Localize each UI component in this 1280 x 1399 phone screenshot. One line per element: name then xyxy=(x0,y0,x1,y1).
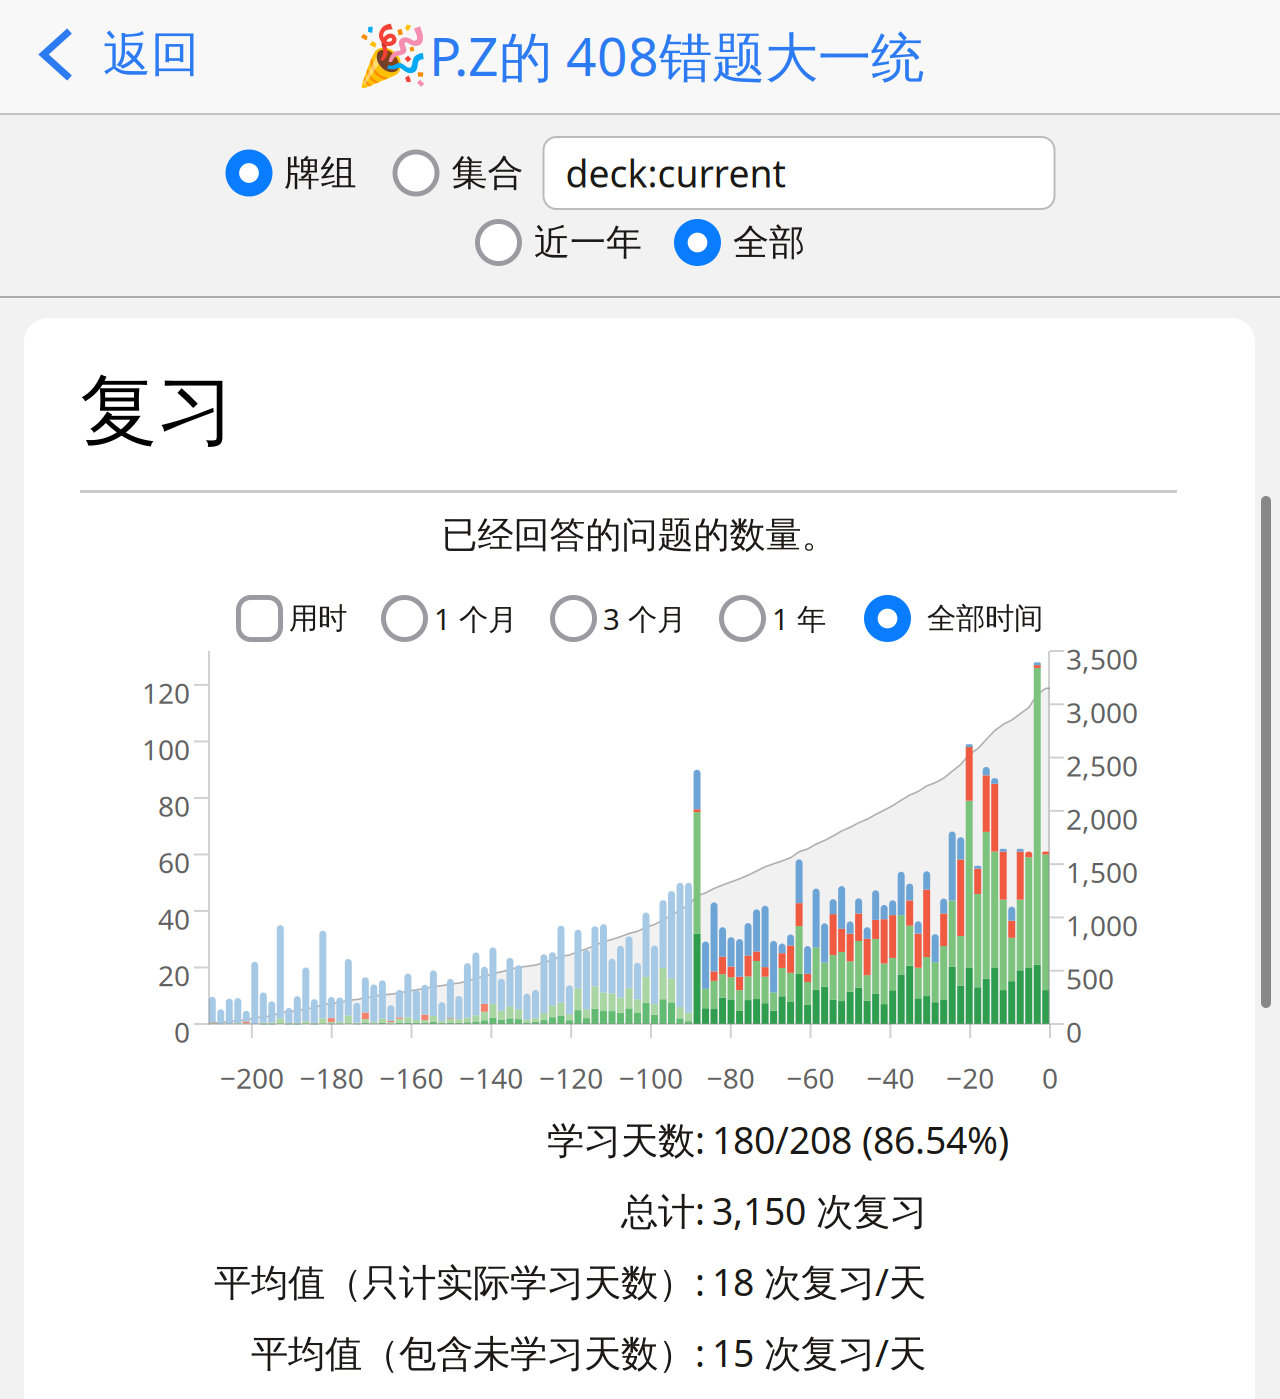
staticText: 🎉 xyxy=(356,22,429,89)
staticText: 全部时间 xyxy=(927,600,1043,636)
staticText: 集合 xyxy=(451,151,523,195)
staticText: 100 xyxy=(142,731,190,768)
staticText: 近一年 xyxy=(534,220,642,265)
staticText: 1,500 xyxy=(1066,854,1138,891)
button[interactable]: 全部时间 xyxy=(864,595,1043,642)
staticText: 1 个月 xyxy=(434,599,517,638)
staticText: −160 xyxy=(379,1059,443,1097)
staticText: 500 xyxy=(1066,960,1114,997)
staticText: 60 xyxy=(158,844,190,881)
staticText: 18 次复习/天 xyxy=(712,1257,926,1306)
staticText: 全部 xyxy=(733,220,805,265)
staticText: 用时 xyxy=(289,600,347,636)
button[interactable]: 1 年 xyxy=(719,595,826,642)
staticText: −40 xyxy=(866,1059,914,1097)
staticText: −120 xyxy=(539,1059,603,1097)
staticText: 2,500 xyxy=(1066,747,1138,784)
button[interactable]: 全部 xyxy=(674,219,805,266)
button[interactable]: 1 个月 xyxy=(381,595,517,642)
staticText: 20 xyxy=(158,957,190,994)
staticText: 120 xyxy=(142,674,190,711)
staticText: 15 次复习/天 xyxy=(712,1328,926,1377)
button[interactable]: 用时 xyxy=(236,595,347,642)
button[interactable]: 3 个月 xyxy=(550,595,686,642)
staticText: 学习天数: xyxy=(547,1115,705,1164)
staticText: 复习 xyxy=(80,363,234,458)
staticText: −100 xyxy=(619,1059,683,1097)
staticText: 40 xyxy=(158,900,190,938)
staticText: 3,000 xyxy=(1066,694,1138,731)
button[interactable]: 返回 xyxy=(40,0,240,109)
staticText: P.Z的 408错题大一统 xyxy=(429,20,924,91)
button[interactable]: 牌组 xyxy=(225,149,356,196)
staticText: 牌组 xyxy=(284,151,356,195)
staticText: 180/208 (86.54%) xyxy=(712,1115,1009,1164)
staticText: 2,000 xyxy=(1066,800,1138,837)
staticText: −200 xyxy=(220,1059,284,1097)
staticText: 总计: xyxy=(621,1186,705,1235)
staticText: −140 xyxy=(459,1059,523,1097)
staticText: −80 xyxy=(707,1059,755,1097)
staticText: 已经回答的问题的数量。 xyxy=(441,513,837,557)
staticText: 平均值（包含未学习天数）: xyxy=(251,1328,705,1377)
staticText: 3,500 xyxy=(1066,640,1138,678)
button[interactable]: 近一年 xyxy=(475,219,642,266)
button[interactable]: 集合 xyxy=(392,149,523,196)
staticText: −20 xyxy=(946,1059,994,1097)
staticText: 80 xyxy=(158,787,190,824)
staticText: 0 xyxy=(174,1013,190,1051)
staticText: 1 年 xyxy=(772,599,826,638)
staticText: 0 xyxy=(1042,1059,1058,1097)
staticText: −180 xyxy=(300,1059,364,1097)
staticText: 1,000 xyxy=(1066,907,1138,944)
staticText: −60 xyxy=(787,1059,835,1097)
staticText: 3 个月 xyxy=(603,599,686,638)
staticText: 3,150 次复习 xyxy=(712,1186,927,1235)
staticText: 返回 xyxy=(103,25,199,84)
staticText: deck:current xyxy=(565,148,785,198)
staticText: 0 xyxy=(1066,1013,1082,1051)
staticText: 平均值（只计实际学习天数）: xyxy=(214,1257,705,1306)
